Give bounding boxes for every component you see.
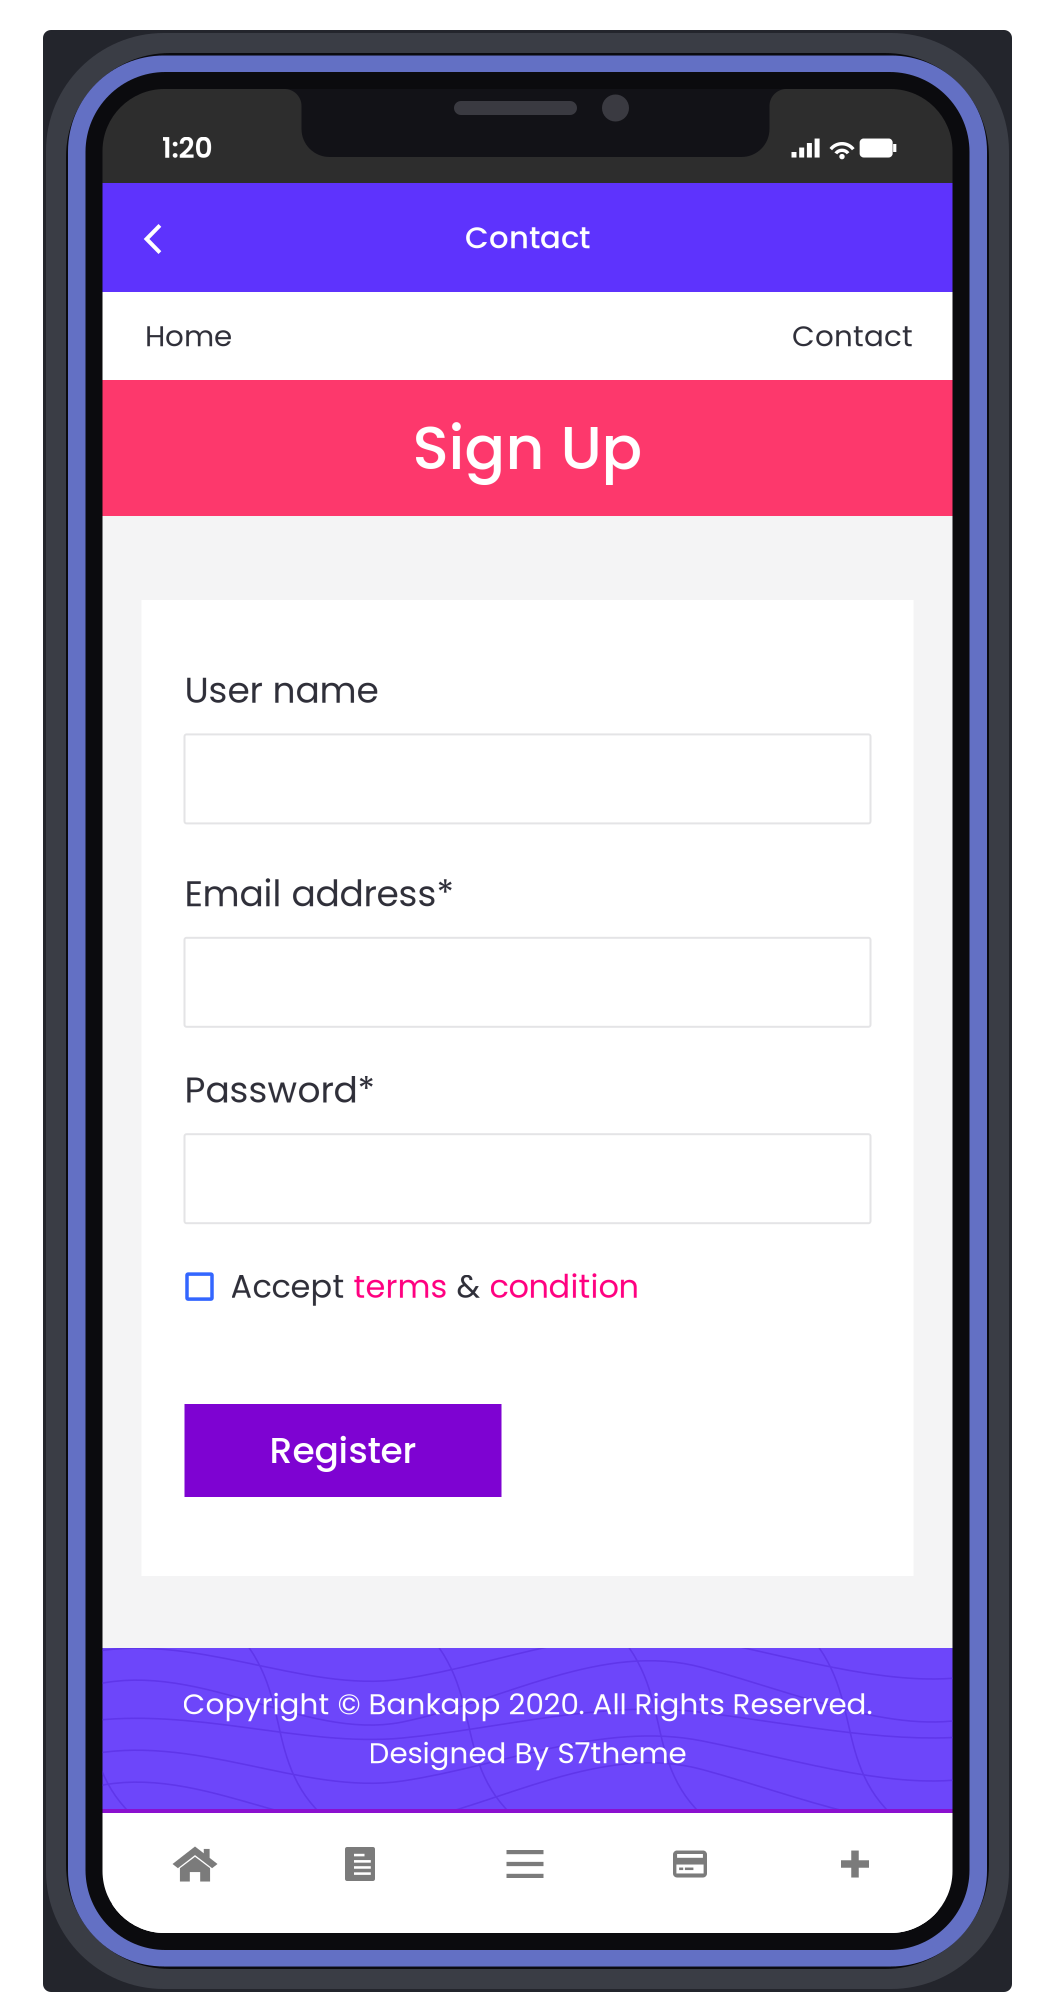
staticText: Email address*: [184, 868, 453, 919]
button[interactable]: Back: [115, 191, 189, 283]
button[interactable]: condition: [489, 1264, 638, 1309]
staticText: Password*: [184, 1065, 374, 1115]
staticText: terms: [353, 1264, 447, 1309]
staticText: &: [447, 1264, 489, 1309]
button[interactable]: Add: [772, 1813, 937, 1933]
staticText: Accept: [230, 1264, 353, 1309]
button[interactable]: Contact: [788, 308, 916, 364]
staticText: User name: [184, 665, 378, 715]
button[interactable]: Register: [184, 1404, 501, 1497]
staticText: Register: [269, 1425, 416, 1476]
staticText: Contact: [792, 315, 913, 357]
button[interactable]: Cards: [607, 1813, 772, 1933]
staticText: condition: [489, 1264, 638, 1309]
staticText: Sign Up: [412, 406, 642, 490]
button[interactable]: Documents: [277, 1813, 442, 1933]
staticText: Contact: [465, 216, 590, 259]
staticText: Copyright © Bankapp 2020. All Rights Res…: [182, 1683, 872, 1724]
button[interactable]: Home: [142, 308, 234, 364]
button[interactable]: Accept terms and condition: [184, 1270, 214, 1304]
button[interactable]: Home: [112, 1813, 277, 1933]
staticText: 1:20: [161, 128, 212, 168]
button[interactable]: Menu: [442, 1813, 607, 1933]
button[interactable]: terms: [353, 1264, 447, 1309]
staticText: Home: [145, 315, 232, 357]
staticText: Designed By S7theme: [368, 1732, 686, 1774]
